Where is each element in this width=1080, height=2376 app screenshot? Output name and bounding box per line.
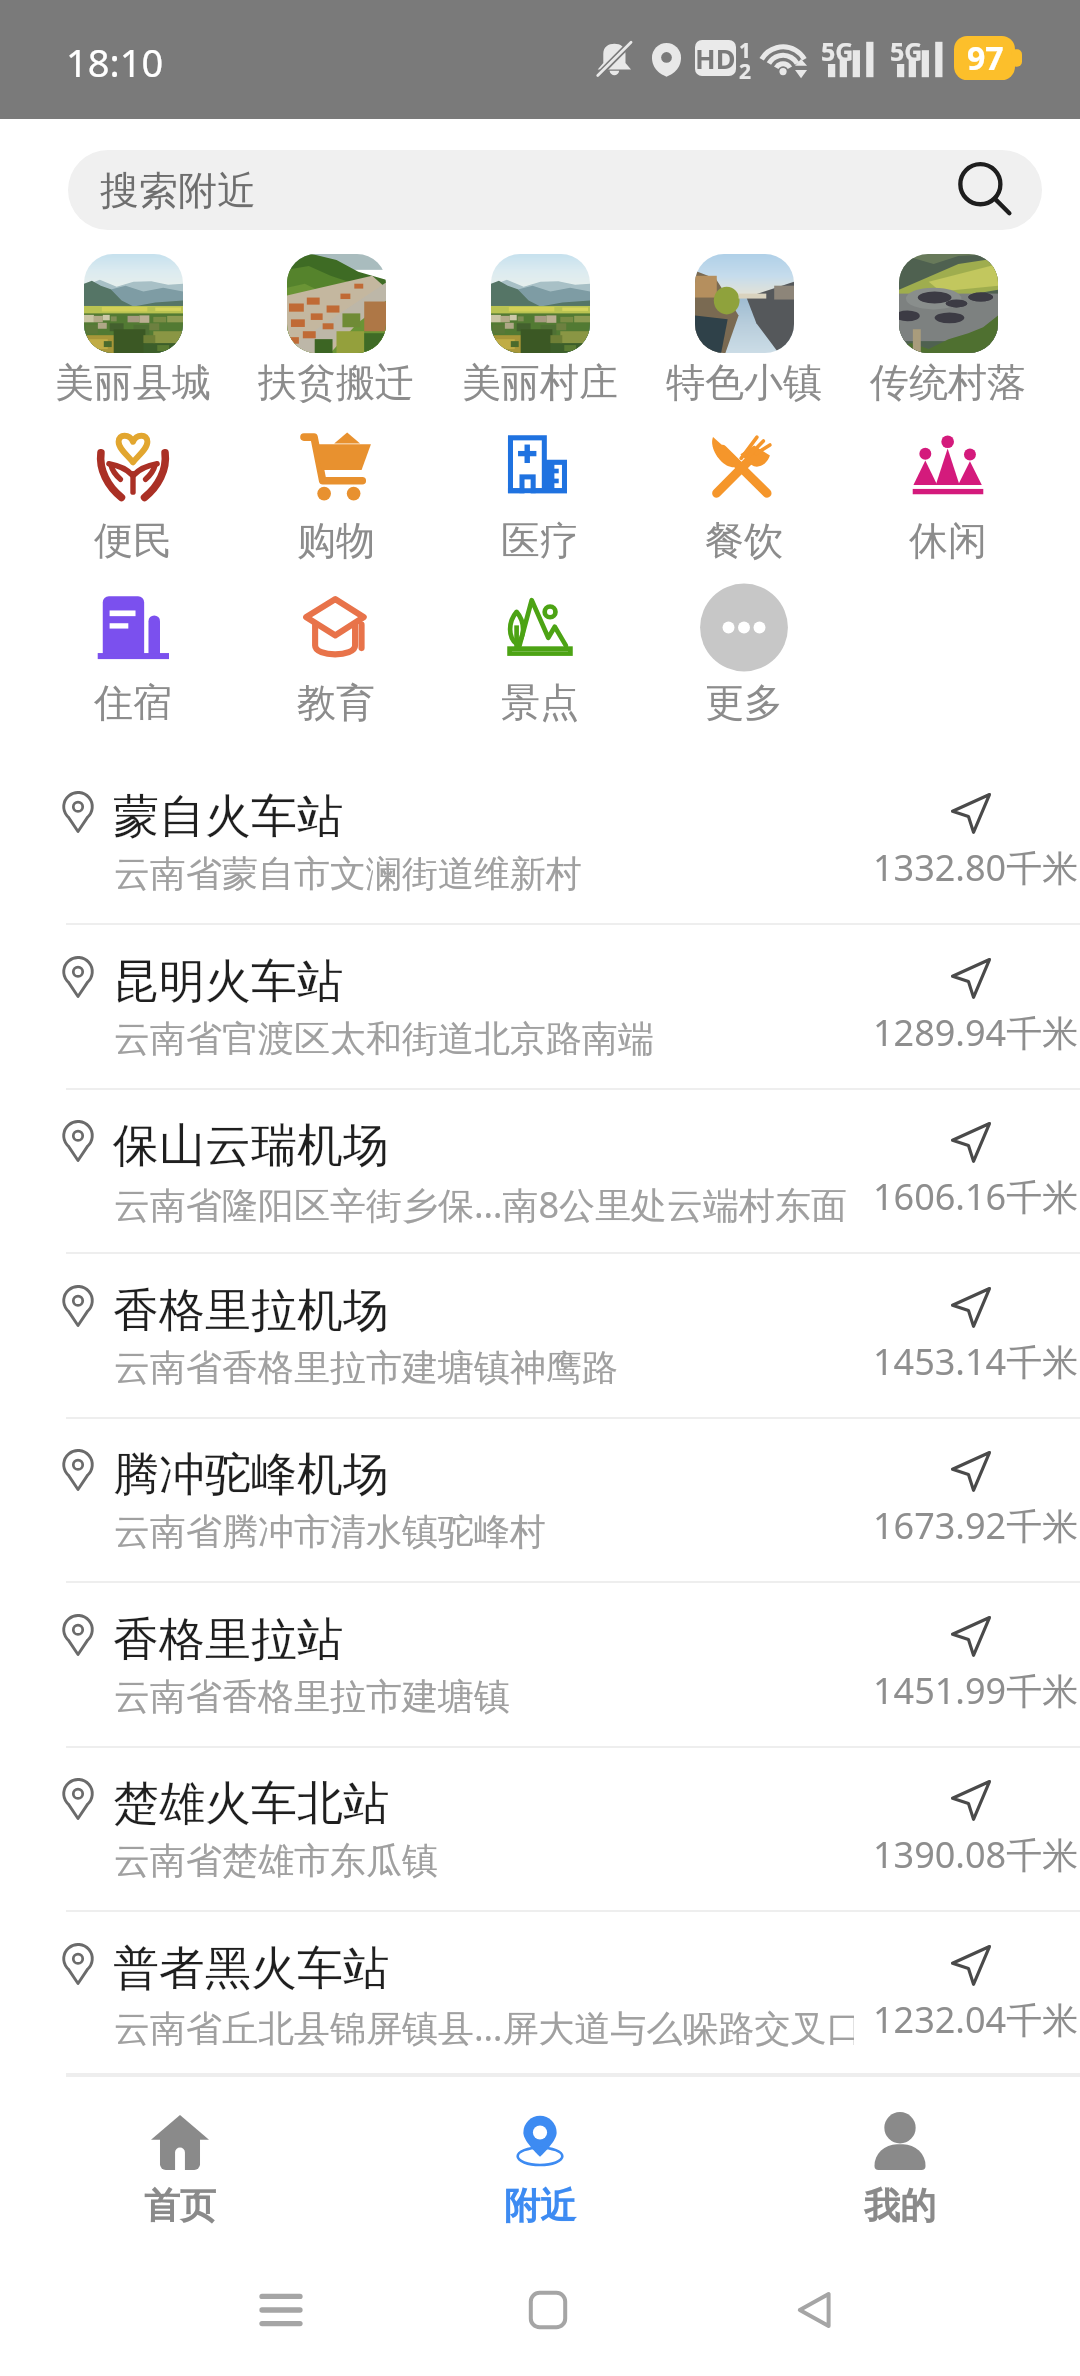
button[interactable]: 香格里拉机场 bbox=[0, 1255, 1080, 1419]
staticText: 休闲 bbox=[909, 516, 987, 565]
staticText: 1232.04千米 bbox=[873, 1995, 1080, 2044]
button[interactable]: 蒙自火车站 bbox=[0, 761, 1080, 925]
staticText: 医疗 bbox=[501, 516, 579, 565]
staticText: 昆明火车站 bbox=[113, 953, 343, 1011]
staticText: 云南省蒙自市文澜街道维新村 bbox=[114, 851, 854, 896]
staticText: 云南省楚雄市东瓜镇 bbox=[114, 1838, 854, 1883]
staticText: HD bbox=[695, 40, 736, 76]
staticText: 5G bbox=[821, 34, 854, 68]
button[interactable]: 腾冲驼峰机场 bbox=[0, 1419, 1080, 1583]
staticText: 美丽县城 bbox=[55, 358, 211, 407]
button[interactable]: 景点 bbox=[440, 586, 640, 732]
staticText: 扶贫搬迁 bbox=[258, 358, 414, 407]
staticText: 97 bbox=[967, 36, 1004, 80]
button[interactable]: 美丽村庄 bbox=[440, 248, 640, 400]
button[interactable]: 医疗 bbox=[440, 424, 640, 570]
staticText: 楚雄火车北站 bbox=[113, 1775, 389, 1833]
staticText: 云南省隆阳区辛街乡保…南8公里处云端村东面 bbox=[114, 1180, 854, 1229]
staticText: 附近 bbox=[504, 2183, 576, 2228]
staticText: 云南省丘北县锦屏镇县…屏大道与么哚路交叉口 bbox=[114, 2003, 854, 2052]
staticText: 搜索附近 bbox=[100, 166, 256, 215]
staticText: 1289.94千米 bbox=[873, 1008, 1080, 1057]
button[interactable]: 住宿 bbox=[33, 586, 233, 732]
staticText: 便民 bbox=[94, 516, 172, 565]
staticText: 云南省香格里拉市建塘镇神鹰路 bbox=[114, 1345, 854, 1390]
staticText: 1390.08千米 bbox=[873, 1830, 1080, 1879]
staticText: 云南省香格里拉市建塘镇 bbox=[114, 1674, 854, 1719]
staticText: 普者黑火车站 bbox=[113, 1940, 389, 1998]
button[interactable]: 普者黑火车站 bbox=[0, 1913, 1080, 2077]
button[interactable]: 特色小镇 bbox=[644, 248, 844, 400]
button[interactable]: 我的 bbox=[760, 2111, 1040, 2233]
button[interactable]: 楚雄火车北站 bbox=[0, 1748, 1080, 1912]
staticText: 我的 bbox=[864, 2183, 936, 2228]
staticText: 1332.80千米 bbox=[873, 843, 1080, 892]
staticText: 更多 bbox=[705, 678, 783, 727]
button[interactable]: 传统村落 bbox=[848, 248, 1048, 400]
staticText: 首页 bbox=[144, 2183, 216, 2228]
button[interactable]: 更多 bbox=[644, 586, 844, 732]
button[interactable]: 保山云瑞机场 bbox=[0, 1090, 1080, 1254]
button[interactable]: 美丽县城 bbox=[33, 248, 233, 400]
staticText: 2 bbox=[739, 57, 752, 86]
staticText: 餐饮 bbox=[705, 516, 783, 565]
staticText: 1673.92千米 bbox=[873, 1501, 1080, 1550]
button[interactable]: 首页 bbox=[40, 2111, 320, 2233]
staticText: 蒙自火车站 bbox=[113, 788, 343, 846]
button[interactable]: 教育 bbox=[236, 586, 436, 732]
staticText: 购物 bbox=[297, 516, 375, 565]
staticText: 保山云瑞机场 bbox=[113, 1117, 389, 1175]
staticText: 1451.99千米 bbox=[873, 1666, 1080, 1715]
staticText: 腾冲驼峰机场 bbox=[113, 1446, 389, 1504]
button[interactable]: Home bbox=[458, 2265, 638, 2355]
staticText: 传统村落 bbox=[870, 358, 1026, 407]
button[interactable]: 搜索附近 bbox=[68, 150, 1042, 230]
staticText: 景点 bbox=[501, 678, 579, 727]
button[interactable]: 昆明火车站 bbox=[0, 926, 1080, 1090]
staticText: 1 bbox=[739, 36, 752, 65]
button[interactable]: 附近 bbox=[400, 2111, 680, 2233]
staticText: 1453.14千米 bbox=[873, 1337, 1080, 1386]
button[interactable]: Back bbox=[725, 2265, 905, 2355]
staticText: 18:10 bbox=[66, 36, 164, 88]
staticText: 5G bbox=[890, 34, 923, 68]
staticText: 云南省腾冲市清水镇驼峰村 bbox=[114, 1509, 854, 1554]
staticText: 美丽村庄 bbox=[462, 358, 618, 407]
button[interactable]: 餐饮 bbox=[644, 424, 844, 570]
button[interactable]: 便民 bbox=[33, 424, 233, 570]
staticText: 云南省官渡区太和街道北京路南端 bbox=[114, 1016, 854, 1061]
button[interactable]: 购物 bbox=[236, 424, 436, 570]
button[interactable]: 扶贫搬迁 bbox=[236, 248, 436, 400]
staticText: 1606.16千米 bbox=[873, 1172, 1080, 1221]
button[interactable]: 香格里拉站 bbox=[0, 1584, 1080, 1748]
staticText: 特色小镇 bbox=[666, 358, 822, 407]
staticText: 教育 bbox=[297, 678, 375, 727]
staticText: 住宿 bbox=[94, 678, 172, 727]
button[interactable]: Recent apps bbox=[191, 2265, 371, 2355]
staticText: 香格里拉机场 bbox=[113, 1282, 389, 1340]
staticText: 香格里拉站 bbox=[113, 1611, 343, 1669]
button[interactable]: 休闲 bbox=[848, 424, 1048, 570]
